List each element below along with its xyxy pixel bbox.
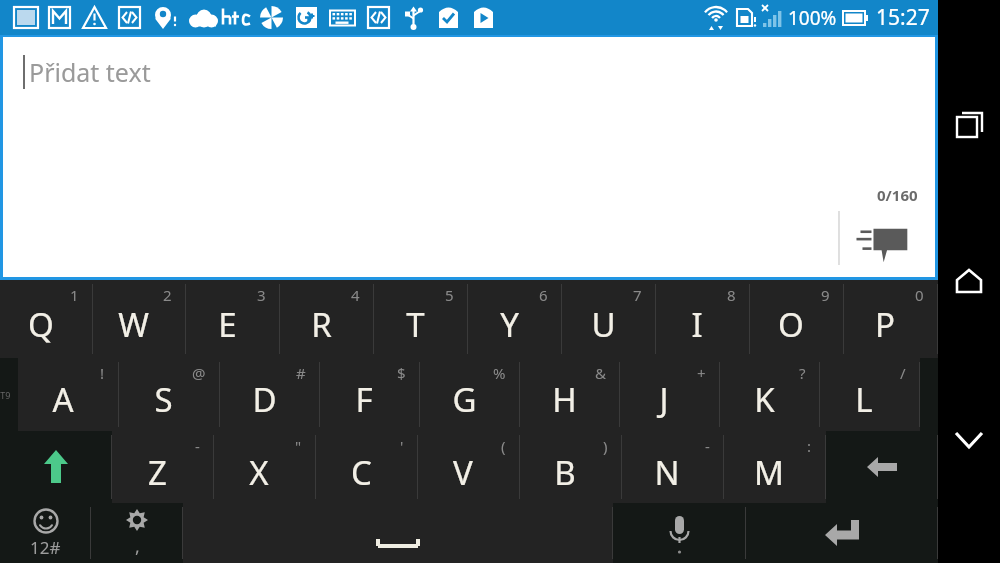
button[interactable]: P [844,280,938,358]
staticText: O [778,302,804,347]
button[interactable]: Space [183,503,613,563]
staticText: Q [28,302,54,347]
staticText: 2 [163,285,172,305]
button[interactable]: A [18,358,119,431]
button[interactable]: J [620,358,720,431]
staticText: 6 [539,285,548,305]
staticText: ( [501,436,506,456]
staticText: S [154,377,173,422]
button[interactable]: T [374,280,468,358]
staticText: A [52,377,74,422]
staticText: W [118,302,149,347]
staticText: , [135,534,140,559]
button[interactable]: Emoji [0,503,91,563]
staticText: % [493,363,506,383]
button[interactable]: Hide keyboard [943,413,995,465]
button[interactable]: Recents [943,99,995,151]
button[interactable]: U [562,280,656,358]
staticText: " [295,436,302,456]
button[interactable]: Shift [0,431,112,503]
staticText: X [249,450,269,495]
button[interactable]: Settings [91,503,183,563]
staticText: 0/160 [877,185,918,205]
staticText: C [351,450,372,495]
button[interactable]: V [418,431,520,503]
button[interactable]: I [656,280,750,358]
button[interactable]: Odeslat zprávu [849,205,921,277]
staticText: 7 [633,285,642,305]
staticText: L [855,377,873,422]
button[interactable]: W [93,280,186,358]
staticText: M [754,450,784,495]
staticText: + [697,363,706,383]
button[interactable]: H [520,358,620,431]
staticText: R [311,302,332,347]
staticText: 1 [70,285,79,305]
staticText: P [875,302,895,347]
button[interactable]: Z [112,431,214,503]
button[interactable]: R [280,280,374,358]
staticText: Y [500,302,519,347]
staticText: 15:27 [876,3,930,32]
button[interactable]: K [720,358,820,431]
button[interactable]: B [520,431,622,503]
staticText: 9 [821,285,830,305]
button[interactable]: Backspace [826,431,938,503]
button[interactable]: S [119,358,220,431]
staticText: 5 [445,285,454,305]
button[interactable]: L [820,358,920,431]
staticText: U [591,302,616,347]
staticText: / [900,363,906,383]
staticText: 100% [788,5,837,31]
button[interactable]: Q [0,280,93,358]
staticText: Z [148,450,167,495]
staticText: K [754,377,775,422]
button[interactable]: F [320,358,420,431]
button[interactable]: O [750,280,844,358]
button[interactable]: M [724,431,826,503]
staticText: D [252,377,277,422]
button[interactable]: Přidat text [3,37,935,277]
staticText: J [659,377,669,422]
button[interactable]: Enter [746,503,938,563]
staticText: ? [799,363,806,383]
button[interactable]: X [214,431,316,503]
staticText: V [453,450,473,495]
staticText: # [296,363,306,383]
staticText: T [406,302,425,347]
staticText: 12# [30,536,61,559]
staticText: - [195,436,200,456]
staticText: - [705,436,710,456]
staticText: ' [400,436,404,456]
button[interactable]: Voice input [613,503,746,563]
staticText: & [595,363,606,383]
staticText: : [807,436,812,456]
staticText: 8 [727,285,736,305]
staticText: G [452,377,477,422]
staticText: ! [100,363,105,383]
staticText: 3 [257,285,266,305]
staticText: $ [397,363,406,383]
staticText: N [654,450,680,495]
button[interactable]: G [420,358,520,431]
staticText: F [355,377,373,422]
staticText: E [218,302,237,347]
staticText: XT9 [0,389,11,401]
button[interactable]: D [220,358,320,431]
staticText: Přidat text [29,55,151,89]
staticText: I [691,302,703,347]
staticText: 4 [351,285,360,305]
staticText: H [552,377,577,422]
staticText: 0 [915,285,924,305]
button[interactable]: E [186,280,280,358]
button[interactable]: C [316,431,418,503]
button[interactable]: Home [943,256,995,308]
button[interactable]: Y [468,280,562,358]
button[interactable]: N [622,431,724,503]
staticText: @ [192,363,206,383]
staticText: ) [603,436,608,456]
staticText: B [554,450,576,495]
